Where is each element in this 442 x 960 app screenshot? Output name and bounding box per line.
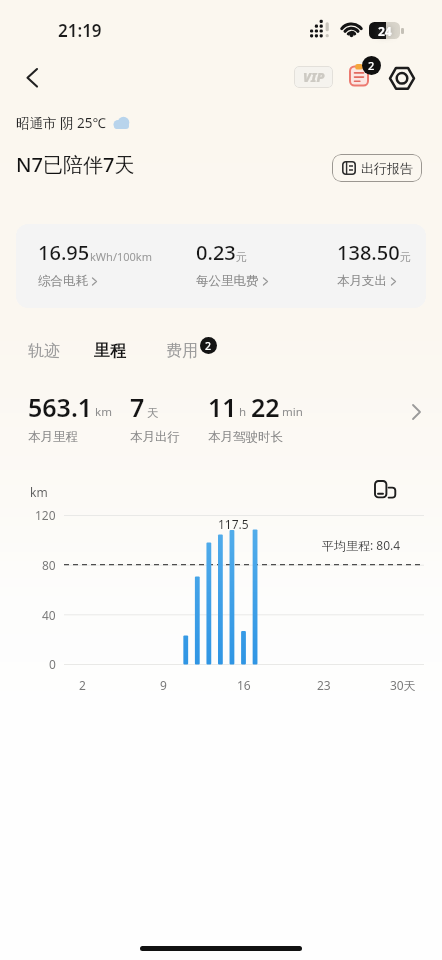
staticText: km [95, 404, 112, 420]
staticText: 2 [368, 58, 375, 73]
button[interactable]: 出行报告 [332, 154, 422, 182]
button[interactable]: 费用 [166, 341, 198, 361]
staticText: 费用 [166, 341, 198, 361]
staticText: 16 [237, 677, 251, 693]
staticText: 0.23 [196, 239, 236, 266]
staticText: 2 [79, 677, 86, 693]
staticText: 120 [35, 507, 56, 523]
staticText: 80 [42, 557, 56, 573]
staticText: 本月里程 [28, 429, 78, 445]
staticText: 30天 [390, 677, 416, 693]
button[interactable]: 轨迹 [28, 341, 60, 361]
staticText: 16.95 [38, 239, 90, 266]
staticText: 24 [378, 23, 392, 39]
staticText: 昭通市 阴 25℃ [16, 114, 106, 132]
staticText: km [30, 484, 48, 500]
button[interactable]: 16.95 [38, 239, 153, 289]
button[interactable] [387, 62, 419, 94]
button[interactable]: 563.1 [0, 390, 442, 450]
staticText: 7 [130, 390, 145, 424]
staticText: 40 [42, 607, 56, 623]
staticText: 里程 [94, 341, 126, 361]
staticText: 563.1 [28, 390, 93, 424]
staticText: 平均里程: 80.4 [322, 537, 401, 553]
staticText: 23 [317, 677, 331, 693]
button[interactable] [18, 62, 52, 96]
staticText: kWh/100km [90, 249, 153, 264]
button[interactable]: VIP [294, 66, 333, 88]
staticText: 22 [251, 390, 280, 424]
button[interactable]: 0.23 [196, 239, 269, 289]
staticText: 21:19 [58, 19, 102, 42]
button[interactable]: 里程 [94, 341, 126, 361]
staticText: 2 [205, 339, 212, 353]
staticText: 138.50 [337, 239, 400, 266]
button[interactable]: 138.50 [337, 239, 411, 289]
staticText: min [282, 404, 303, 420]
staticText: 本月出行 [130, 429, 180, 445]
staticText: 9 [160, 677, 167, 693]
button[interactable]: 2 [348, 54, 384, 90]
staticText: 天 [147, 406, 159, 420]
staticText: 综合电耗 [38, 273, 88, 289]
staticText: 0 [49, 656, 56, 672]
staticText: 本月驾驶时长 [208, 429, 283, 445]
staticText: 本月支出 [337, 273, 387, 289]
staticText: 出行报告 [361, 160, 413, 176]
staticText: 轨迹 [28, 341, 60, 361]
staticText: N7已陪伴7天 [16, 151, 135, 178]
staticText: VIP [303, 68, 325, 86]
staticText: h [239, 404, 247, 420]
staticText: 117.5 [218, 516, 249, 532]
staticText: 每公里电费 [196, 273, 259, 289]
button[interactable] [372, 478, 400, 502]
staticText: 元 [400, 250, 411, 264]
staticText: 11 [208, 390, 237, 424]
staticText: 元 [236, 250, 247, 264]
